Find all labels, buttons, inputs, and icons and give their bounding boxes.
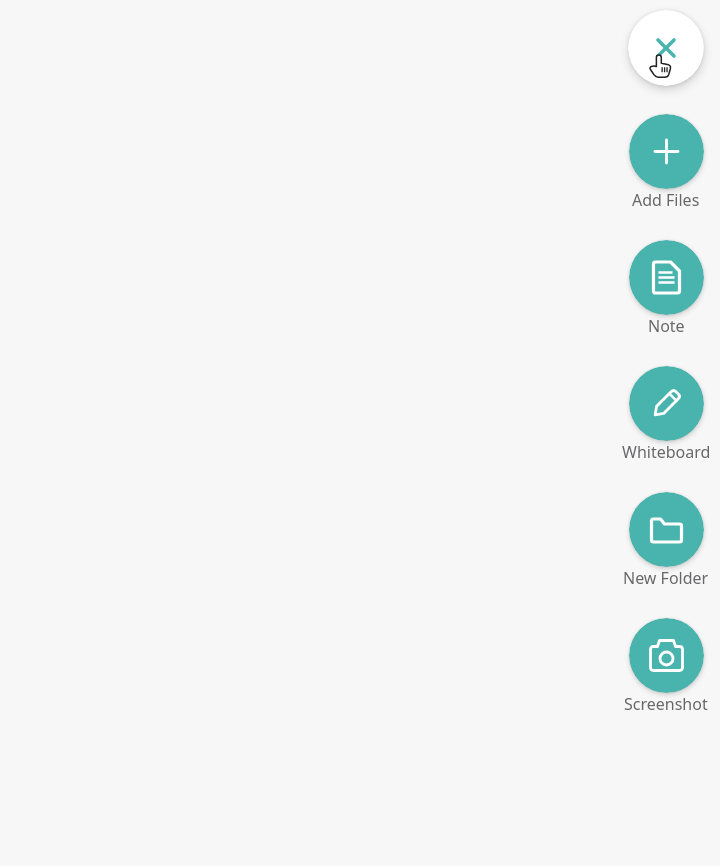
button[interactable] [629, 240, 704, 315]
staticText: Screenshot [624, 693, 708, 715]
staticText: New Folder [623, 567, 709, 589]
button[interactable] [629, 114, 704, 189]
button[interactable] [629, 366, 704, 441]
staticText: Note [648, 315, 685, 337]
staticText: Add Files [632, 189, 700, 211]
button[interactable] [629, 618, 704, 693]
button[interactable] [629, 492, 704, 567]
staticText: Whiteboard [622, 441, 711, 463]
button[interactable] [628, 10, 704, 86]
